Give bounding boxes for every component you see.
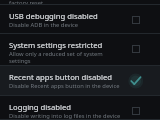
button[interactable]: Unchecked <box>128 12 144 28</box>
staticText: Logging disabled <box>9 102 72 112</box>
button[interactable]: Unchecked <box>128 103 144 119</box>
staticText: Recent apps button disabled <box>9 72 113 82</box>
button[interactable]: Factory reset disabled <box>0 0 160 5</box>
button[interactable]: Unchecked <box>128 41 144 57</box>
button[interactable]: Checked <box>128 73 144 89</box>
staticText: Disable ADB in the device <box>9 21 79 29</box>
button[interactable]: USB debugging disabled <box>0 5 160 34</box>
staticText: Allow only a reduced set of system setti… <box>9 50 124 65</box>
staticText: Disable Recent apps button in the device <box>9 82 120 90</box>
button[interactable]: System settings restricted <box>0 34 160 66</box>
staticText: System settings restricted <box>9 40 103 50</box>
staticText: Disable the possibility of performing fa… <box>9 0 124 7</box>
staticText: USB debugging disabled <box>9 11 98 21</box>
staticText: Disable writing into log files in the de… <box>9 112 121 120</box>
button[interactable]: Recent apps button disabled <box>0 66 160 96</box>
button[interactable]: Logging disabled <box>0 96 160 120</box>
